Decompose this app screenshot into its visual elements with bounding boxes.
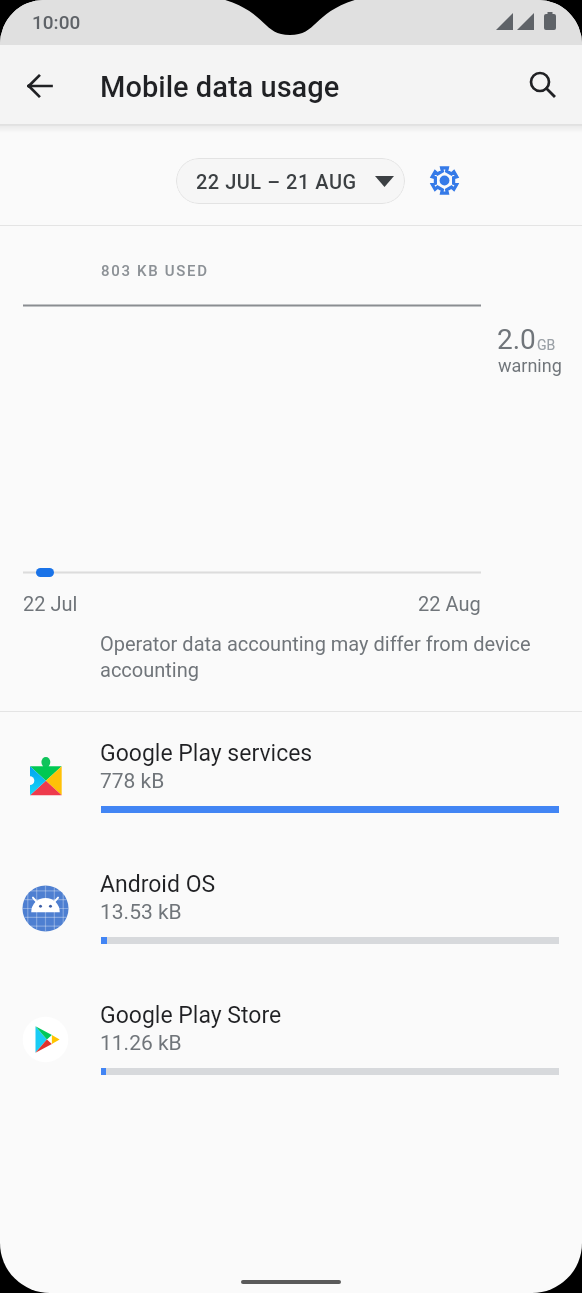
button[interactable]: Google Play Store (0, 974, 582, 1105)
staticText: 22 Jul (23, 592, 78, 615)
button[interactable]: Search (519, 62, 567, 110)
staticText: 2.0 (497, 323, 536, 356)
button[interactable]: Android OS (0, 843, 582, 974)
staticText: Google Play services (100, 740, 313, 767)
staticText: 778 kB (100, 769, 165, 794)
staticText: 803 KB USED (101, 262, 209, 280)
staticText: Operator data accounting may differ from… (100, 632, 548, 681)
staticText: Google Play Store (100, 1002, 282, 1029)
staticText: warning (498, 355, 562, 376)
button[interactable]: Navigate up (16, 62, 64, 110)
button[interactable]: 22 JUL – 21 AUG (176, 158, 405, 204)
button[interactable]: Data usage settings (422, 158, 466, 202)
staticText: Android OS (100, 871, 216, 898)
staticText: 11.26 kB (100, 1031, 182, 1056)
staticText: 10:00 (32, 11, 81, 33)
button[interactable]: Google Play services (0, 712, 582, 843)
staticText: GB (537, 337, 556, 353)
staticText: Mobile data usage (100, 70, 340, 104)
staticText: 22 Aug (418, 592, 481, 615)
staticText: 22 JUL – 21 AUG (196, 170, 357, 193)
staticText: 13.53 kB (100, 900, 182, 925)
